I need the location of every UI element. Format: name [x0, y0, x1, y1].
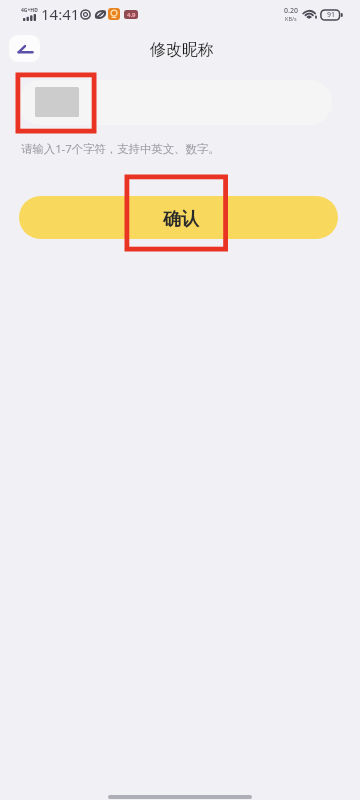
- staticText: 14:41: [41, 4, 80, 24]
- staticText: 91: [327, 10, 336, 20]
- staticText: 确认: [163, 208, 199, 231]
- staticText: 4.9: [127, 11, 136, 19]
- staticText: 0.20: [284, 6, 298, 16]
- staticText: 修改昵称: [150, 40, 214, 60]
- button[interactable]: 确认: [19, 196, 338, 239]
- staticText: 4G+HD: [21, 7, 38, 14]
- button[interactable]: Back: [9, 35, 40, 62]
- button[interactable]: [18, 80, 332, 125]
- staticText: 请输入1-7个字符，支持中英文、数字。: [21, 141, 220, 157]
- staticText: KB/s: [285, 15, 297, 22]
